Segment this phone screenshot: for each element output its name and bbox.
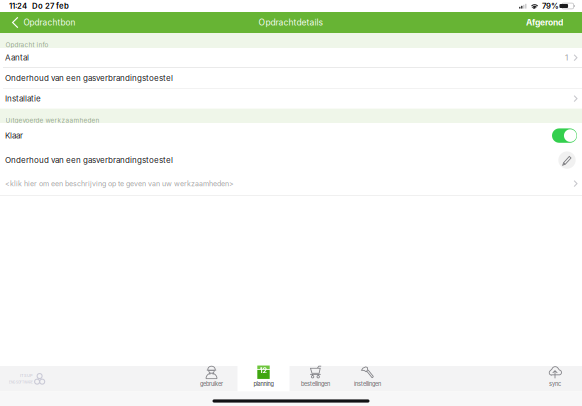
button[interactable]: 12: [237, 366, 289, 391]
staticText: 12: [259, 366, 267, 375]
button[interactable]: Onderhoud van een gasverbrandingstoestel: [0, 68, 582, 88]
button[interactable]: Beschrijving bewerken: [557, 151, 576, 170]
staticText: Afgerond: [526, 17, 563, 28]
staticText: Aantal: [5, 53, 29, 63]
staticText: Opdrachtdetails: [258, 17, 323, 28]
button[interactable]: <klik hier om een beschrijving op te gev…: [0, 172, 582, 195]
button[interactable]: bestellingen: [289, 366, 341, 391]
button[interactable]: Onderhoud van een gasverbrandingstoestel: [0, 148, 582, 172]
button[interactable]: instellingen: [341, 366, 393, 391]
staticText: Klaar: [5, 131, 23, 140]
staticText: Installatie: [5, 94, 41, 103]
staticText: <klik hier om een beschrijving op te gev…: [5, 179, 234, 188]
button[interactable]: Afgerond: [516, 12, 582, 33]
staticText: Uitgevoerde werkzaamheden: [5, 117, 99, 124]
button[interactable]: sync: [533, 366, 577, 391]
button[interactable]: Installatie: [0, 89, 582, 109]
button[interactable]: gebruiker: [185, 366, 237, 391]
staticText: sync: [549, 380, 561, 387]
staticText: 11:24: [9, 1, 27, 11]
staticText: 1: [565, 53, 568, 63]
staticText: ITSUP: [20, 373, 33, 378]
staticText: 79%: [542, 1, 559, 11]
staticText: gebruiker: [200, 380, 223, 387]
staticText: bestellingen: [301, 380, 330, 387]
button[interactable]: Klaar: [0, 123, 582, 148]
staticText: Opdrachtbon: [23, 17, 75, 27]
staticText: planning: [253, 380, 273, 387]
staticText: Do 27 feb: [32, 1, 69, 11]
staticText: Onderhoud van een gasverbrandingstoestel: [5, 155, 173, 165]
button[interactable]: Aantal: [0, 48, 582, 67]
staticText: Onderhoud van een gasverbrandingstoestel: [5, 73, 173, 83]
button[interactable]: Opdrachtbon: [0, 12, 83, 33]
staticText: Opdracht info: [5, 41, 48, 49]
staticText: ENG SOFTWARE: [9, 380, 33, 384]
staticText: instellingen: [354, 380, 381, 387]
